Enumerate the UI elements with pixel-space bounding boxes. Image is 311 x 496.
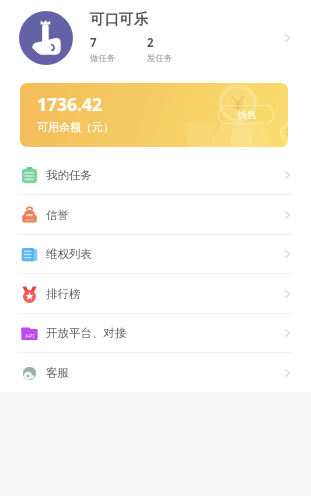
button[interactable]: 排行榜 <box>0 274 311 314</box>
staticText: 信誉 <box>46 208 69 222</box>
staticText: 维权列表 <box>46 247 92 261</box>
staticText: 钱包 <box>237 109 256 121</box>
staticText: 1736.42 <box>37 92 102 116</box>
staticText: 做任务 <box>90 53 116 64</box>
button[interactable]: 客服 <box>0 353 311 393</box>
button[interactable]: 可口可乐 <box>0 11 311 65</box>
button[interactable]: 1736.42 <box>20 83 288 147</box>
button[interactable]: 我的任务 <box>0 155 311 195</box>
staticText: 2 <box>147 35 154 51</box>
staticText: 可用余额（元） <box>37 120 114 134</box>
button[interactable]: 信誉 <box>0 195 311 235</box>
staticText: 7 <box>90 35 97 51</box>
button[interactable]: 钱包 <box>218 105 274 124</box>
staticText: 客服 <box>46 366 69 380</box>
button[interactable]: 维权列表 <box>0 234 311 274</box>
staticText: API <box>25 332 35 340</box>
staticText: 开放平台、对接 <box>46 326 127 340</box>
staticText: 可口可乐 <box>90 10 148 28</box>
staticText: 发任务 <box>147 53 173 64</box>
button[interactable]: API <box>0 313 311 353</box>
staticText: 我的任务 <box>46 168 92 182</box>
staticText: 排行榜 <box>46 287 81 301</box>
